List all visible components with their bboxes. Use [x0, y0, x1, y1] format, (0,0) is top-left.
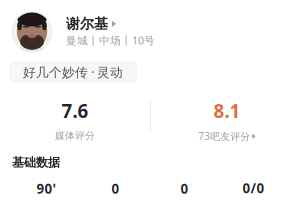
staticText: 0/0: [242, 179, 264, 197]
staticText: 媒体评分: [55, 129, 95, 142]
staticText: 曼城丨中场丨10号: [66, 33, 155, 47]
button[interactable]: 8.1: [152, 98, 300, 143]
staticText: 谢尔基: [66, 15, 108, 33]
staticText: 73吧友评分: [198, 129, 250, 143]
staticText: 0: [180, 179, 188, 198]
button[interactable]: 7.6: [0, 98, 150, 142]
button[interactable]: Player photo: [12, 12, 52, 52]
staticText: 0: [111, 179, 119, 198]
staticText: 好几个妙传 · 灵动: [23, 63, 123, 81]
staticText: 7.6: [61, 98, 88, 123]
staticText: 基础数据: [12, 155, 60, 170]
button[interactable]: 谢尔基: [66, 15, 116, 33]
staticText: 8.1: [213, 98, 240, 123]
staticText: 90': [36, 179, 56, 198]
